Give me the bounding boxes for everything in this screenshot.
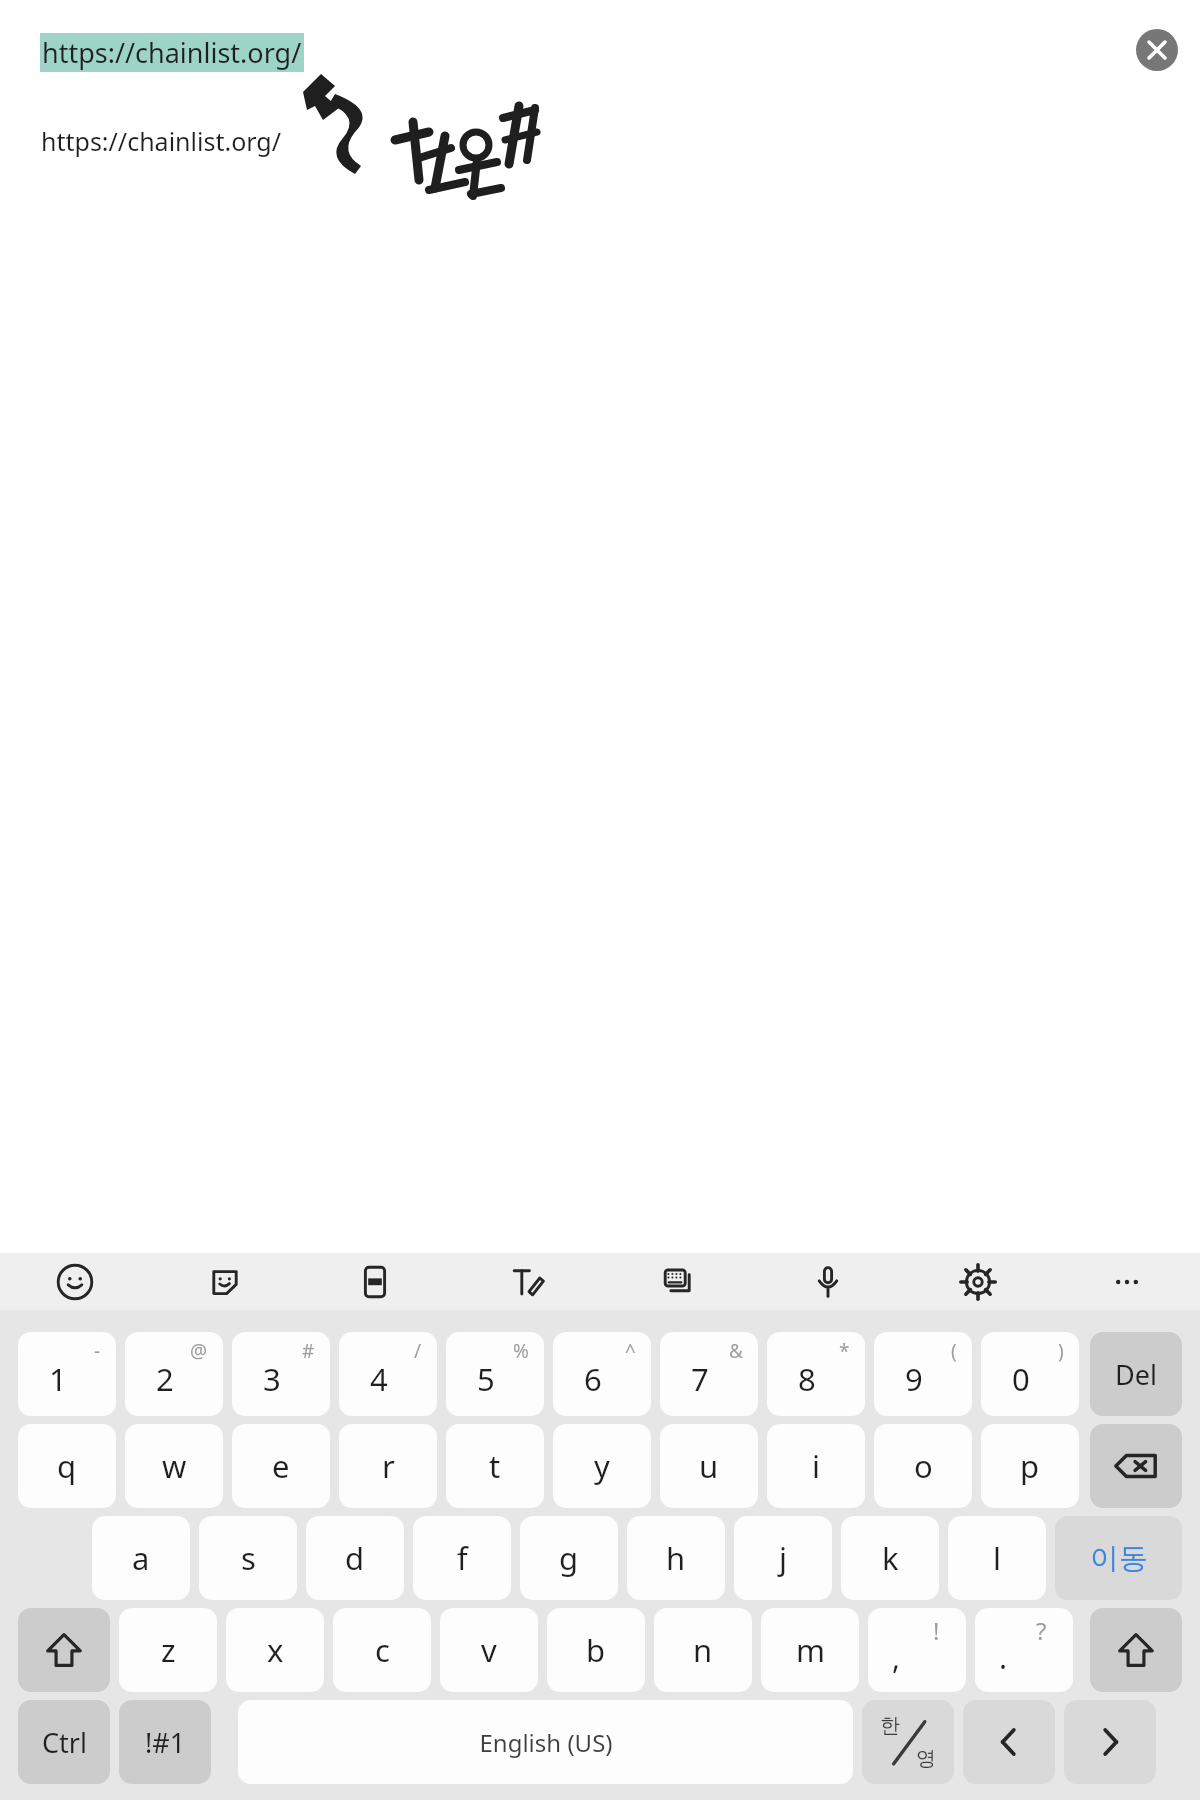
button[interactable]: Emoji <box>43 1253 107 1310</box>
staticText: v <box>481 1629 497 1671</box>
button[interactable]: r <box>339 1424 437 1508</box>
staticText: 0 <box>1012 1358 1030 1400</box>
button[interactable]: s <box>199 1516 297 1600</box>
staticText: 영 <box>916 1746 936 1771</box>
button[interactable]: 0 <box>981 1332 1079 1416</box>
staticText: ( <box>951 1338 957 1364</box>
button[interactable]: Symbols <box>119 1700 211 1784</box>
button[interactable]: j <box>734 1516 832 1600</box>
button[interactable]: Voice input <box>796 1253 860 1310</box>
button[interactable]: p <box>981 1424 1079 1508</box>
button[interactable]: 3 <box>232 1332 330 1416</box>
button[interactable]: w <box>125 1424 223 1508</box>
button[interactable]: v <box>440 1608 538 1692</box>
staticText: e <box>272 1445 290 1487</box>
staticText: h <box>666 1537 686 1579</box>
button[interactable]: 2 <box>125 1332 223 1416</box>
button[interactable]: i <box>767 1424 865 1508</box>
staticText: @ <box>190 1338 208 1364</box>
staticText: 5 <box>477 1358 495 1400</box>
button[interactable]: Go <box>1055 1516 1182 1600</box>
button[interactable]: Move cursor left <box>963 1700 1055 1784</box>
button[interactable]: k <box>841 1516 939 1600</box>
staticText: ) <box>1058 1338 1064 1364</box>
staticText: p <box>1020 1445 1040 1487</box>
button[interactable]: u <box>660 1424 758 1508</box>
button[interactable]: Ctrl <box>18 1700 110 1784</box>
staticText: English (US) <box>479 1726 613 1759</box>
button[interactable]: Keyboard modes <box>646 1253 710 1310</box>
button[interactable]: More options <box>1095 1253 1159 1310</box>
button[interactable]: Switch between Korean and English <box>862 1700 954 1784</box>
button[interactable]: d <box>306 1516 404 1600</box>
staticText: ^ <box>625 1338 636 1364</box>
button[interactable]: n <box>654 1608 752 1692</box>
staticText: 4 <box>370 1358 388 1400</box>
staticText: 2 <box>156 1358 174 1400</box>
button[interactable]: z <box>119 1608 217 1692</box>
button[interactable]: Space, English (US) <box>238 1700 853 1784</box>
button[interactable]: 7 <box>660 1332 758 1416</box>
button[interactable]: . <box>975 1608 1073 1692</box>
button[interactable]: b <box>547 1608 645 1692</box>
button[interactable]: g <box>520 1516 618 1600</box>
button[interactable]: Close <box>1127 20 1187 80</box>
button[interactable]: m <box>761 1608 859 1692</box>
button[interactable]: t <box>446 1424 544 1508</box>
staticText: m <box>796 1629 825 1671</box>
staticText: w <box>162 1445 187 1487</box>
button[interactable]: Settings <box>946 1253 1010 1310</box>
staticText: ! <box>933 1614 940 1647</box>
button[interactable]: y <box>553 1424 651 1508</box>
staticText: f <box>457 1537 468 1579</box>
staticText: t <box>489 1445 501 1487</box>
button[interactable]: c <box>333 1608 431 1692</box>
staticText: Del <box>1115 1356 1157 1393</box>
staticText: 9 <box>905 1358 923 1400</box>
staticText: !#1 <box>145 1724 186 1761</box>
button[interactable]: o <box>874 1424 972 1508</box>
button[interactable]: 9 <box>874 1332 972 1416</box>
staticText: https://chainlist.org/ <box>42 34 302 71</box>
staticText: d <box>345 1537 365 1579</box>
staticText: https://chainlist.org/ <box>41 124 282 158</box>
button[interactable]: Backspace <box>1090 1424 1182 1508</box>
staticText: x <box>267 1629 284 1671</box>
staticText: s <box>241 1537 256 1579</box>
staticText: u <box>699 1445 719 1487</box>
button[interactable]: q <box>18 1424 116 1508</box>
staticText: % <box>513 1338 529 1364</box>
staticText: 이동 <box>1090 1540 1148 1577</box>
button[interactable]: 6 <box>553 1332 651 1416</box>
button[interactable]: x <box>226 1608 324 1692</box>
staticText: Ctrl <box>42 1724 87 1761</box>
button[interactable]: 8 <box>767 1332 865 1416</box>
button[interactable]: a <box>92 1516 190 1600</box>
staticText: . <box>999 1637 1008 1678</box>
button[interactable]: e <box>232 1424 330 1508</box>
staticText: q <box>57 1445 77 1487</box>
button[interactable]: l <box>948 1516 1046 1600</box>
button[interactable]: Shift <box>1090 1608 1182 1692</box>
button[interactable]: , <box>868 1608 966 1692</box>
staticText: b <box>586 1629 606 1671</box>
button[interactable]: GIF <box>343 1253 407 1310</box>
button[interactable]: Stickers <box>193 1253 257 1310</box>
staticText: 7 <box>691 1358 709 1400</box>
staticText: * <box>839 1338 850 1364</box>
button[interactable]: Move cursor right <box>1064 1700 1156 1784</box>
button[interactable]: 4 <box>339 1332 437 1416</box>
staticText: / <box>414 1338 422 1364</box>
button[interactable]: Handwriting <box>495 1253 559 1310</box>
staticText: ? <box>1036 1614 1047 1647</box>
button[interactable]: 5 <box>446 1332 544 1416</box>
staticText: i <box>812 1445 820 1487</box>
button[interactable]: h <box>627 1516 725 1600</box>
button[interactable]: 1 <box>18 1332 116 1416</box>
staticText: 3 <box>263 1358 281 1400</box>
button[interactable]: Del <box>1090 1332 1182 1416</box>
button[interactable]: f <box>413 1516 511 1600</box>
button[interactable]: Shift <box>18 1608 110 1692</box>
staticText: z <box>161 1629 176 1671</box>
staticText: # <box>302 1338 315 1364</box>
